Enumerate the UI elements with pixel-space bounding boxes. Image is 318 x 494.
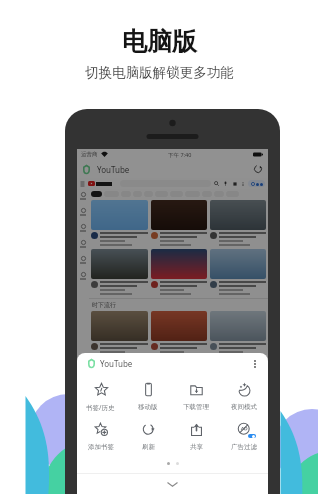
staticText: YouTube — [100, 358, 133, 369]
button[interactable]: 添加书签 — [77, 422, 124, 451]
staticText: 书签/历史 — [86, 403, 115, 412]
button[interactable]: 夜间模式 — [220, 382, 268, 411]
button[interactable]: 广告过滤 — [220, 422, 268, 451]
staticText: 电脑版 — [122, 26, 197, 57]
staticText: 运营商 — [81, 151, 98, 158]
staticText: 下载管理 — [183, 403, 209, 411]
staticText: 广告过滤 — [231, 443, 257, 451]
button[interactable]: More options — [251, 358, 259, 370]
button[interactable]: 下载管理 — [172, 382, 220, 411]
staticText: 夜间模式 — [231, 403, 257, 411]
staticText: 时下流行 — [92, 301, 116, 309]
staticText: 添加书签 — [88, 443, 114, 451]
staticText: 刷新 — [142, 443, 155, 451]
staticText: 共享 — [190, 443, 203, 451]
staticText: 切换电脑版解锁更多功能 — [85, 64, 234, 81]
button[interactable]: 共享 — [172, 422, 220, 451]
staticText: YouTube — [97, 164, 130, 175]
staticText: 移动版 — [138, 403, 158, 411]
button[interactable]: Collapse — [77, 474, 268, 494]
button[interactable]: 移动版 — [124, 382, 172, 411]
button[interactable]: 刷新 — [124, 422, 172, 451]
button[interactable]: Reload — [253, 164, 263, 174]
button[interactable]: 书签/历史 — [77, 382, 124, 412]
staticText: 下午 7:40 — [168, 151, 192, 159]
